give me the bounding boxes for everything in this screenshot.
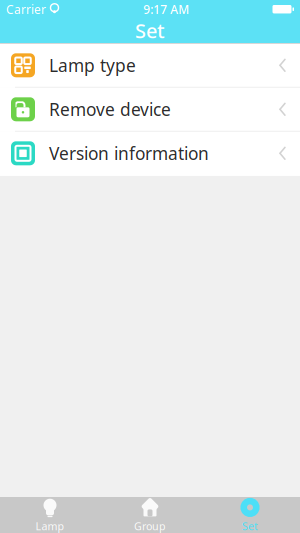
staticText: Lamp type <box>49 54 136 77</box>
staticText: Set <box>242 519 258 533</box>
staticText: Version information <box>49 142 209 165</box>
staticText: Lamp <box>35 519 64 533</box>
button[interactable]: Lamp type <box>0 44 300 88</box>
staticText: Group <box>134 519 166 533</box>
button[interactable]: Remove device <box>0 88 300 132</box>
staticText: Carrier <box>6 1 46 17</box>
button[interactable]: Set <box>200 497 300 533</box>
button[interactable]: Group <box>100 497 200 533</box>
staticText: Set <box>135 17 165 44</box>
staticText: Remove device <box>49 98 171 121</box>
button[interactable]: Lamp <box>0 497 100 533</box>
button[interactable]: Version information <box>0 132 300 176</box>
staticText: 9:17 AM <box>143 1 189 17</box>
